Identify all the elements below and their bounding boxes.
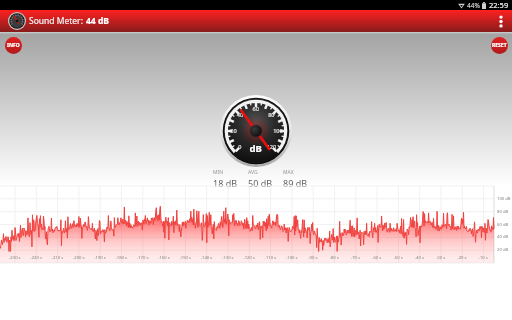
staticText: 18 dB: [213, 177, 238, 189]
staticText: RESET: [492, 42, 507, 49]
staticText: AVG: [248, 169, 258, 176]
staticText: MAX: [283, 169, 294, 176]
staticText: 89 dB: [283, 177, 308, 189]
staticText: 44 dB: [86, 15, 109, 27]
button[interactable]: More options: [490, 10, 512, 32]
staticText: 50 dB: [248, 177, 273, 189]
staticText: Sound Meter:: [29, 15, 86, 27]
staticText: INFO: [7, 42, 20, 49]
button[interactable]: Reset: [491, 37, 508, 54]
staticText: 22:59: [489, 0, 509, 10]
staticText: MIN: [213, 169, 224, 176]
button[interactable]: App info: [5, 37, 22, 54]
staticText: 44%: [467, 1, 480, 10]
